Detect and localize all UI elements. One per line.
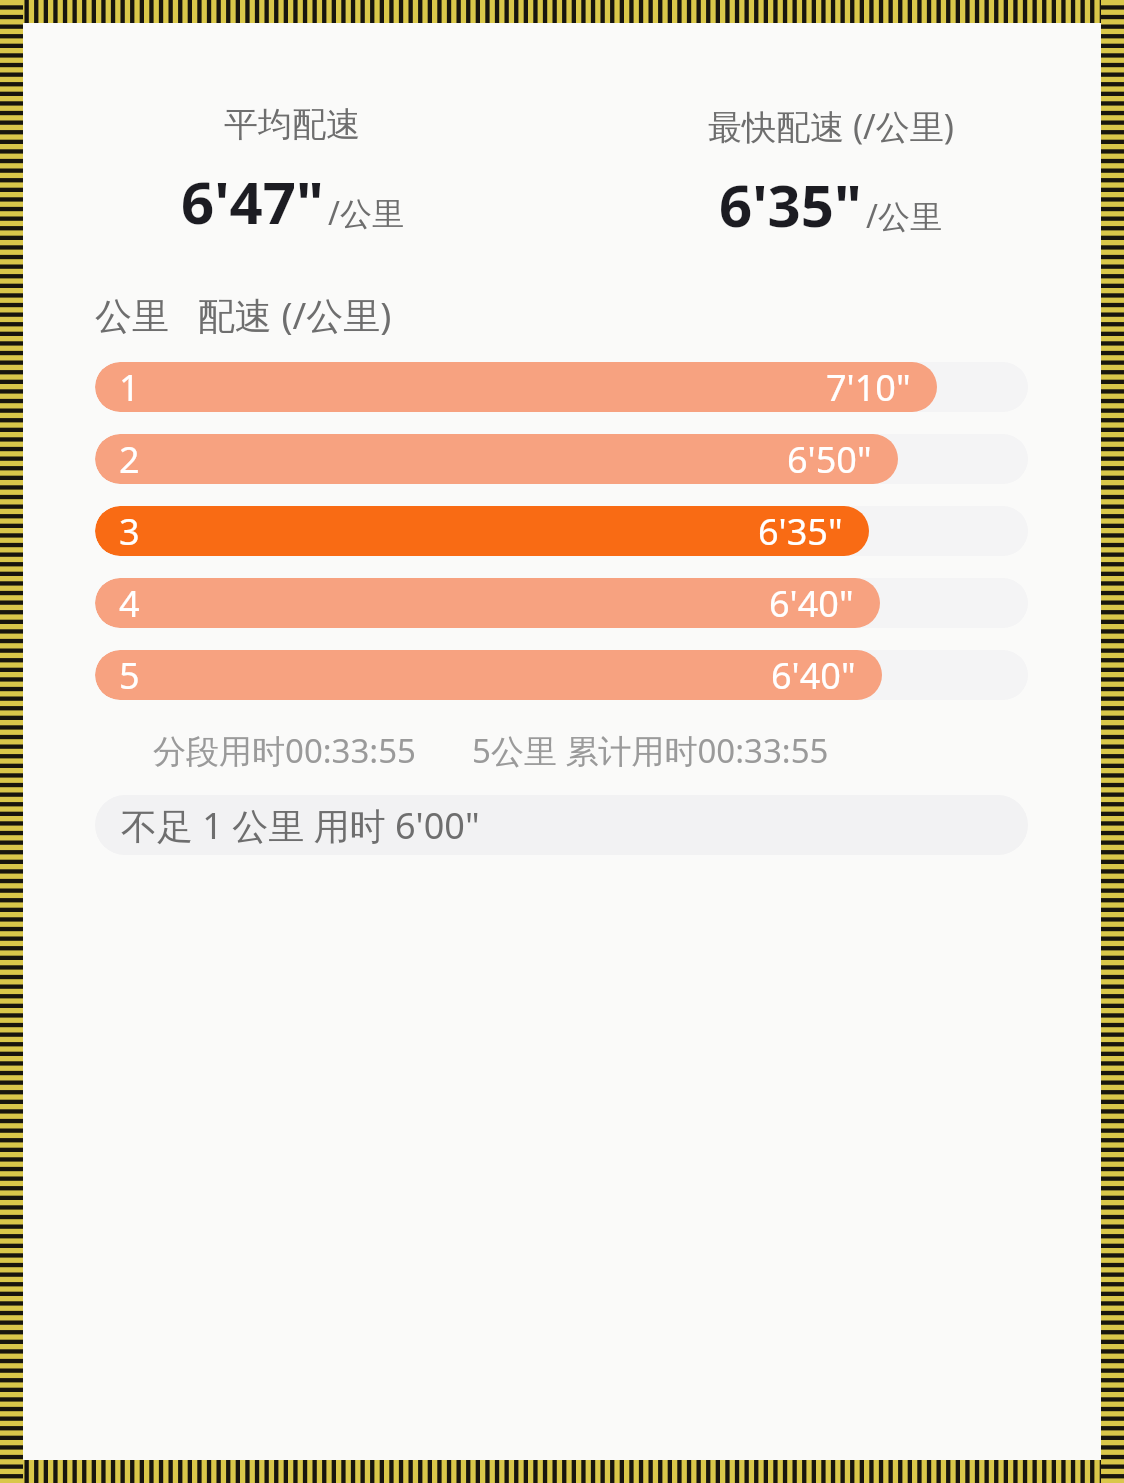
button[interactable]: 2 bbox=[95, 434, 1028, 484]
button[interactable]: 平均配速 bbox=[23, 103, 561, 241]
staticText: 3 bbox=[119, 507, 140, 556]
button[interactable]: 5 bbox=[95, 650, 1028, 700]
staticText: 6'50" bbox=[787, 435, 872, 484]
staticText: 6'40" bbox=[771, 651, 856, 700]
button[interactable]: 不足 1 公里 用时 6'00" bbox=[95, 795, 1028, 855]
staticText: 公里 配速 (/公里) bbox=[95, 289, 392, 340]
staticText: 1 bbox=[119, 363, 140, 412]
staticText: 5公里 累计用时00:33:55 bbox=[472, 728, 829, 773]
button[interactable]: 3 bbox=[95, 506, 1028, 556]
staticText: 6'47" bbox=[181, 162, 324, 241]
staticText: 平均配速 bbox=[224, 103, 360, 146]
button[interactable]: 最快配速 (/公里) bbox=[561, 103, 1100, 244]
staticText: 4 bbox=[119, 579, 140, 628]
button[interactable]: 1 bbox=[95, 362, 1028, 412]
staticText: 5 bbox=[119, 651, 140, 700]
staticText: /公里 bbox=[328, 191, 404, 235]
staticText: 2 bbox=[119, 435, 140, 484]
staticText: 最快配速 (/公里) bbox=[708, 103, 954, 149]
staticText: 不足 1 公里 用时 6'00" bbox=[121, 801, 480, 850]
staticText: /公里 bbox=[866, 194, 942, 238]
staticText: 7'10" bbox=[826, 363, 911, 412]
staticText: 分段用时00:33:55 bbox=[153, 728, 416, 773]
other: Decorative frame bbox=[0, 0, 1124, 1483]
staticText: 6'35" bbox=[758, 507, 843, 556]
button[interactable]: 4 bbox=[95, 578, 1028, 628]
staticText: 6'35" bbox=[719, 165, 862, 244]
staticText: 6'40" bbox=[769, 579, 854, 628]
